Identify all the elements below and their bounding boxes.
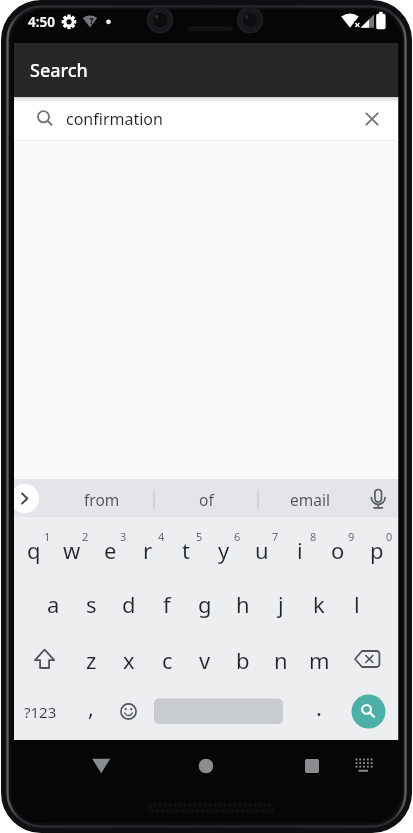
- button[interactable]: j: [262, 577, 300, 631]
- staticText: y: [218, 535, 230, 565]
- button[interactable]: r: [129, 523, 167, 577]
- staticText: z: [86, 645, 97, 675]
- button[interactable]: n: [262, 633, 300, 687]
- staticText: 9: [348, 529, 355, 543]
- button[interactable]: k: [300, 577, 338, 631]
- button[interactable]: email: [258, 480, 362, 518]
- staticText: confirmation: [66, 108, 163, 130]
- staticText: j: [278, 589, 284, 619]
- staticText: 6: [234, 529, 241, 543]
- staticText: w: [63, 535, 81, 565]
- button[interactable]: b: [224, 633, 262, 687]
- button[interactable]: [14, 97, 399, 141]
- button[interactable]: [10, 484, 40, 514]
- button[interactable]: [354, 101, 390, 137]
- button[interactable]: [20, 632, 72, 686]
- staticText: email: [290, 489, 330, 510]
- button[interactable]: f: [148, 577, 186, 631]
- staticText: 0: [386, 529, 393, 543]
- staticText: f: [163, 589, 171, 619]
- staticText: m: [309, 645, 330, 675]
- button[interactable]: w: [53, 523, 91, 577]
- button[interactable]: [182, 742, 230, 790]
- staticText: d: [122, 589, 136, 619]
- button[interactable]: [77, 742, 125, 790]
- button[interactable]: [110, 684, 148, 738]
- staticText: h: [236, 589, 250, 619]
- button[interactable]: q: [15, 523, 53, 577]
- button[interactable]: i: [281, 523, 319, 577]
- staticText: 1: [44, 529, 51, 543]
- staticText: 4: [158, 529, 165, 543]
- button[interactable]: u: [243, 523, 281, 577]
- staticText: a: [47, 589, 60, 619]
- staticText: 3: [120, 529, 127, 543]
- button[interactable]: t: [167, 523, 205, 577]
- staticText: k: [313, 589, 325, 619]
- staticText: c: [162, 645, 173, 675]
- button[interactable]: a: [34, 577, 72, 631]
- staticText: ,: [88, 692, 94, 722]
- staticText: v: [199, 645, 211, 675]
- button[interactable]: z: [72, 633, 110, 687]
- button[interactable]: .: [300, 680, 338, 734]
- staticText: 7: [272, 529, 279, 543]
- staticText: q: [27, 535, 41, 565]
- staticText: ?123: [24, 702, 57, 722]
- button[interactable]: x: [110, 633, 148, 687]
- staticText: p: [370, 535, 384, 565]
- staticText: s: [86, 589, 97, 619]
- button[interactable]: e: [91, 523, 129, 577]
- staticText: u: [255, 535, 269, 565]
- button[interactable]: [362, 480, 396, 516]
- button[interactable]: s: [72, 577, 110, 631]
- staticText: l: [354, 589, 360, 619]
- staticText: .: [316, 692, 322, 722]
- staticText: 5: [196, 529, 203, 543]
- button[interactable]: [345, 684, 395, 738]
- button[interactable]: d: [110, 577, 148, 631]
- button[interactable]: v: [186, 633, 224, 687]
- staticText: n: [274, 645, 288, 675]
- staticText: Search: [30, 58, 88, 83]
- button[interactable]: of: [154, 480, 258, 518]
- button[interactable]: [345, 744, 385, 788]
- button[interactable]: [342, 632, 396, 686]
- button[interactable]: ?123: [14, 685, 66, 739]
- staticText: of: [199, 489, 214, 510]
- button[interactable]: m: [300, 633, 338, 687]
- staticText: r: [143, 535, 153, 565]
- button[interactable]: g: [186, 577, 224, 631]
- button[interactable]: c: [148, 633, 186, 687]
- staticText: 2: [82, 529, 89, 543]
- button[interactable]: [150, 684, 287, 738]
- staticText: o: [331, 535, 345, 565]
- staticText: g: [198, 589, 212, 619]
- button[interactable]: from: [50, 480, 154, 518]
- staticText: 4:50: [28, 13, 55, 31]
- button[interactable]: o: [319, 523, 357, 577]
- staticText: i: [297, 535, 303, 565]
- staticText: x: [123, 645, 135, 675]
- staticText: from: [84, 489, 120, 510]
- staticText: 8: [310, 529, 317, 543]
- staticText: t: [182, 535, 190, 565]
- button[interactable]: ,: [72, 680, 110, 734]
- button[interactable]: l: [338, 577, 376, 631]
- button[interactable]: h: [224, 577, 262, 631]
- staticText: b: [236, 645, 250, 675]
- button[interactable]: y: [205, 523, 243, 577]
- button[interactable]: p: [358, 523, 396, 577]
- staticText: e: [104, 535, 117, 565]
- button[interactable]: [288, 742, 336, 790]
